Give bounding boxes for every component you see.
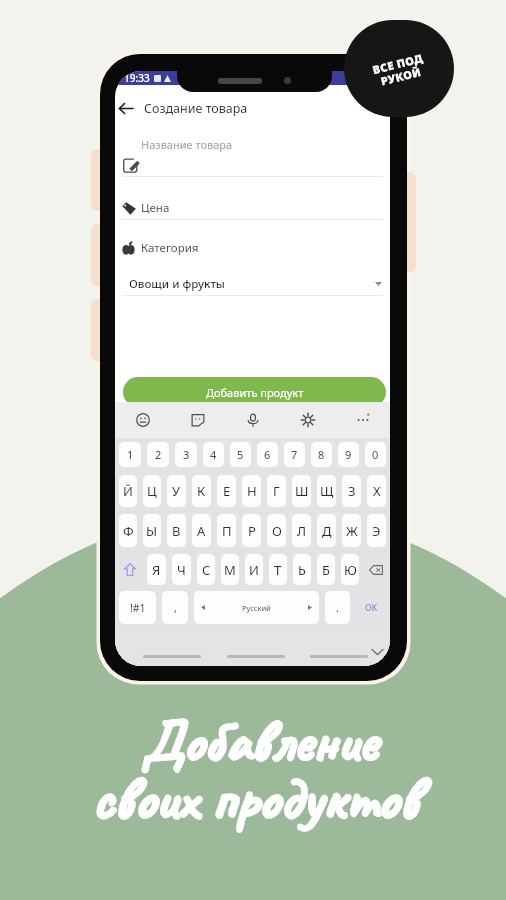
button[interactable]: Щ xyxy=(317,475,336,507)
button[interactable]: more xyxy=(335,402,390,438)
staticText: Категория xyxy=(141,240,199,256)
button[interactable]: 1 xyxy=(119,442,141,467)
button[interactable]: 4 xyxy=(203,442,224,467)
button[interactable]: Й xyxy=(119,475,137,507)
staticText: Ц xyxy=(147,482,157,500)
staticText: Ш xyxy=(295,482,309,500)
button[interactable]: Ч xyxy=(172,554,191,585)
button[interactable]: С xyxy=(197,554,215,585)
button[interactable]: Т xyxy=(269,554,287,585)
staticText: Т xyxy=(274,561,282,579)
staticText: Ч xyxy=(177,561,186,579)
button[interactable]: . xyxy=(325,591,350,624)
button[interactable]: О xyxy=(267,514,286,547)
staticText: Р xyxy=(248,522,256,540)
button[interactable]: У xyxy=(167,475,186,507)
staticText: Ь xyxy=(298,561,306,579)
button[interactable]: Б xyxy=(317,554,335,585)
staticText: Э xyxy=(372,522,381,540)
staticText: 5 xyxy=(237,447,244,462)
button[interactable]: Г xyxy=(267,475,286,507)
button[interactable]: Ф xyxy=(119,514,137,547)
staticText: Цена xyxy=(141,200,170,216)
button[interactable]: Овощи и фрукты xyxy=(129,275,382,292)
button[interactable]: Н xyxy=(242,475,261,507)
staticText: Н xyxy=(247,482,257,500)
staticText: К xyxy=(197,482,206,500)
staticText: Добавить продукт xyxy=(206,385,304,400)
staticText: Ы xyxy=(146,522,158,540)
staticText: Я xyxy=(152,561,161,579)
staticText: Л xyxy=(297,522,307,540)
button[interactable]: 3 xyxy=(175,442,197,467)
button[interactable]: emoji xyxy=(115,402,170,438)
button[interactable]: Ы xyxy=(143,514,161,547)
staticText: 19:33 xyxy=(124,71,150,85)
button[interactable]: М xyxy=(221,554,239,585)
staticText: Й xyxy=(123,482,133,500)
staticText: 1 xyxy=(127,447,134,462)
button[interactable]: Добавить продукт xyxy=(123,377,386,407)
button[interactable]: sticker xyxy=(170,402,225,438)
staticText: OK xyxy=(365,602,378,614)
staticText: Х xyxy=(373,482,381,500)
staticText: О xyxy=(272,522,282,540)
button[interactable]: Е xyxy=(217,475,236,507)
staticText: !#1 xyxy=(130,601,146,615)
button[interactable]: Изменить xyxy=(121,155,140,174)
staticText: 0 xyxy=(372,447,379,462)
button[interactable]: , xyxy=(162,591,188,624)
button[interactable]: Все под рукой xyxy=(344,20,454,117)
button[interactable]: 6 xyxy=(257,442,278,467)
staticText: 6 xyxy=(264,447,271,462)
staticText: Б xyxy=(322,561,330,579)
button[interactable]: Ц xyxy=(143,475,161,507)
staticText: 2 xyxy=(155,447,162,462)
staticText: Е xyxy=(223,482,231,500)
button[interactable]: П xyxy=(217,514,236,547)
button[interactable]: 7 xyxy=(284,442,305,467)
button[interactable]: 8 xyxy=(311,442,332,467)
button[interactable]: И xyxy=(245,554,263,585)
button[interactable]: Ж xyxy=(342,514,361,547)
button[interactable]: Backspace xyxy=(362,550,389,589)
button[interactable]: OK xyxy=(353,589,389,626)
staticText: Ф xyxy=(123,522,134,540)
button[interactable]: Р xyxy=(242,514,261,547)
button[interactable]: Я xyxy=(147,554,166,585)
staticText: Создание товара xyxy=(144,100,248,117)
button[interactable]: З xyxy=(342,475,361,507)
staticText: Название товара xyxy=(141,137,233,152)
button[interactable]: Русский xyxy=(194,591,319,624)
button[interactable]: 5 xyxy=(230,442,251,467)
button[interactable]: 2 xyxy=(147,442,169,467)
staticText: 9 xyxy=(345,447,352,462)
button[interactable]: В xyxy=(167,514,186,547)
button[interactable]: !#1 xyxy=(119,591,156,624)
button[interactable]: Л xyxy=(292,514,311,547)
button[interactable]: Ь xyxy=(293,554,311,585)
button[interactable]: Э xyxy=(367,514,386,547)
button[interactable]: Ш xyxy=(292,475,311,507)
button[interactable]: mic xyxy=(225,402,280,438)
staticText: 3 xyxy=(183,447,190,462)
button[interactable]: Назад xyxy=(116,98,136,118)
button[interactable]: 0 xyxy=(365,442,386,467)
staticText: Ж xyxy=(346,522,358,540)
button[interactable]: Скрыть клавиатуру xyxy=(370,644,384,658)
button[interactable]: К xyxy=(192,475,211,507)
button[interactable]: А xyxy=(192,514,211,547)
staticText: 8 xyxy=(318,447,325,462)
staticText: 4 xyxy=(210,447,217,462)
button[interactable]: Х xyxy=(367,475,386,507)
staticText: Русский xyxy=(242,603,271,613)
button[interactable]: 9 xyxy=(338,442,359,467)
staticText: В xyxy=(172,522,181,540)
button[interactable]: settings xyxy=(280,402,335,438)
staticText: М xyxy=(224,561,236,579)
button[interactable]: Ю xyxy=(341,554,359,585)
button[interactable]: Shift xyxy=(116,550,144,589)
staticText: С xyxy=(202,561,211,579)
staticText: Щ xyxy=(320,482,334,500)
button[interactable]: Д xyxy=(317,514,336,547)
